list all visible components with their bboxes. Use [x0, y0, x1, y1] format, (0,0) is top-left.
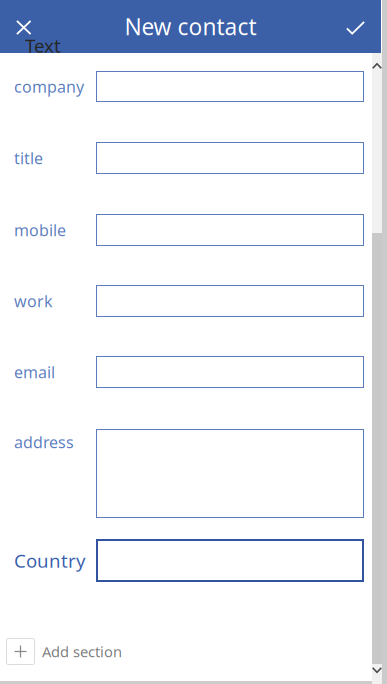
staticText: Country [14, 548, 86, 573]
button[interactable]: work [14, 285, 364, 317]
button[interactable]: title [14, 142, 364, 174]
staticText: email [14, 361, 55, 383]
button[interactable]: address [14, 429, 364, 518]
staticText: address [14, 431, 74, 453]
staticText: mobile [14, 219, 66, 241]
button[interactable]: mobile [14, 214, 364, 246]
staticText: Text [25, 33, 61, 58]
button[interactable]: Save [327, 0, 381, 53]
staticText: New contact [124, 11, 256, 41]
button[interactable]: email [14, 356, 364, 388]
button[interactable]: Add section [0, 638, 371, 665]
button[interactable]: Close [0, 0, 54, 53]
button[interactable]: Country [14, 539, 364, 582]
staticText: Add section [42, 642, 122, 661]
staticText: company [14, 76, 84, 97]
staticText: title [14, 147, 43, 169]
button[interactable]: company [14, 71, 364, 102]
staticText: work [14, 290, 53, 312]
